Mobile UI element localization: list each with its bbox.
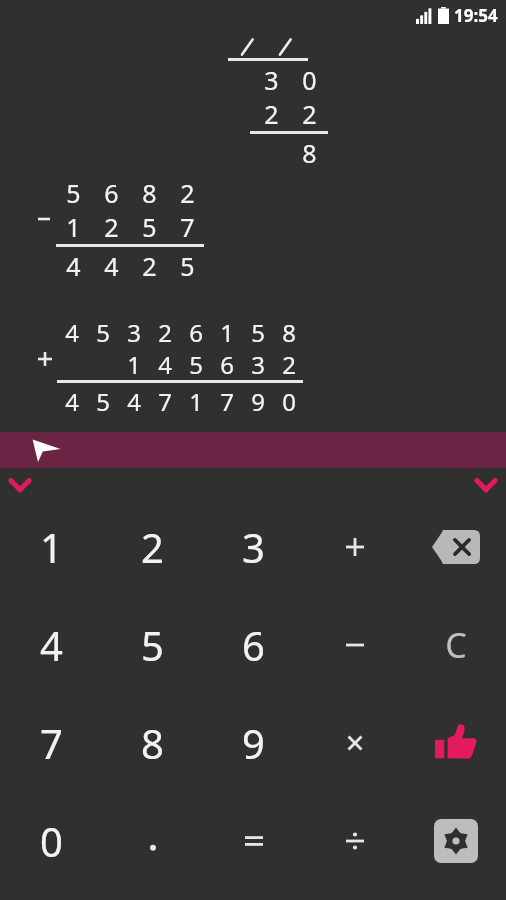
staticText: 3 <box>251 348 265 380</box>
staticText: 2 <box>158 316 172 348</box>
staticText: 0 <box>40 814 63 868</box>
staticText: 4 <box>104 249 119 283</box>
staticText: 19:54 <box>454 4 498 27</box>
button[interactable]: C <box>405 596 506 694</box>
staticText: 3 <box>242 520 265 574</box>
staticText: 1 <box>189 385 203 417</box>
staticText: 7 <box>220 385 234 417</box>
staticText: 6 <box>189 316 203 348</box>
staticText: 7 <box>40 716 63 770</box>
button[interactable]: Settings <box>405 792 506 890</box>
button[interactable]: Backspace <box>405 498 506 596</box>
button[interactable]: Expression cursor <box>0 432 506 468</box>
staticText: 1 <box>40 520 63 574</box>
button[interactable]: 6 <box>203 596 304 694</box>
button[interactable]: 7 <box>0 694 102 792</box>
staticText: 5 <box>251 316 265 348</box>
staticText: 2 <box>282 348 296 380</box>
button[interactable]: Accept <box>405 694 506 792</box>
button[interactable] <box>304 498 405 596</box>
staticText: 1 <box>220 316 234 348</box>
staticText: 2 <box>180 176 195 210</box>
button[interactable] <box>304 694 405 792</box>
staticText: 3 <box>127 316 141 348</box>
staticText: 4 <box>66 249 81 283</box>
staticText: 2 <box>264 97 279 131</box>
staticText: 9 <box>242 716 265 770</box>
staticText: 7 <box>158 385 172 417</box>
staticText: 1 <box>66 210 81 244</box>
button[interactable]: 1 <box>0 498 102 596</box>
staticText: 5 <box>96 385 110 417</box>
staticText: 4 <box>65 385 79 417</box>
button[interactable]: 9 <box>203 694 304 792</box>
button[interactable] <box>304 792 405 890</box>
staticText: 9 <box>251 385 265 417</box>
staticText: 2 <box>141 520 164 574</box>
staticText: 7 <box>180 210 195 244</box>
staticText: 0 <box>302 63 317 97</box>
staticText: 6 <box>220 348 234 380</box>
staticText: 4 <box>65 316 79 348</box>
staticText: 5 <box>180 249 195 283</box>
staticText: 0 <box>282 385 296 417</box>
button[interactable]: 8 <box>102 694 203 792</box>
staticText: 4 <box>40 618 63 672</box>
staticText: 5 <box>142 210 157 244</box>
staticText: 5 <box>189 348 203 380</box>
button[interactable] <box>304 596 405 694</box>
button[interactable]: 2 <box>102 498 203 596</box>
staticText: 8 <box>141 716 164 770</box>
button[interactable] <box>102 792 203 890</box>
button[interactable]: 5 <box>102 596 203 694</box>
staticText: 5 <box>141 618 164 672</box>
staticText: 3 <box>264 63 279 97</box>
button[interactable]: 4 <box>0 596 102 694</box>
staticText: 6 <box>242 618 265 672</box>
staticText: 1 <box>127 348 141 380</box>
staticText: C <box>445 622 467 668</box>
button[interactable]: 3 <box>203 498 304 596</box>
staticText: 2 <box>302 97 317 131</box>
staticText: 6 <box>104 176 119 210</box>
button[interactable]: 0 <box>0 792 102 890</box>
staticText: 8 <box>282 316 296 348</box>
staticText: 4 <box>158 348 172 380</box>
button[interactable]: Scroll down right <box>470 473 502 497</box>
button[interactable]: Scroll down left <box>4 473 36 497</box>
staticText: 5 <box>96 316 110 348</box>
staticText: 8 <box>302 136 317 170</box>
staticText: 2 <box>104 210 119 244</box>
button[interactable] <box>203 792 304 890</box>
staticText: 8 <box>142 176 157 210</box>
staticText: 4 <box>127 385 141 417</box>
staticText: 5 <box>66 176 81 210</box>
staticText: 2 <box>142 249 157 283</box>
